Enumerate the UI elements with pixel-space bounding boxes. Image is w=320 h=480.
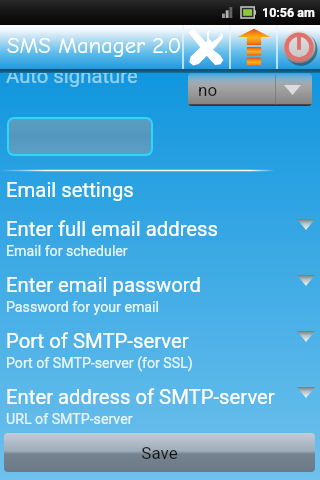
staticText: Save xyxy=(141,443,178,463)
staticText: Email settings xyxy=(6,178,134,202)
staticText: Password for your email xyxy=(6,299,159,316)
button[interactable]: Save xyxy=(4,433,315,472)
staticText: no xyxy=(198,80,218,100)
button[interactable]: Enter email password xyxy=(0,271,320,327)
staticText: URL of SMTP-server xyxy=(6,411,133,428)
staticText: Enter email password xyxy=(6,273,201,297)
button[interactable]: Enter full email address xyxy=(0,215,320,271)
button[interactable]: Tools xyxy=(184,25,229,69)
staticText: Port of SMTP-server xyxy=(6,329,189,353)
staticText: 10:56 am xyxy=(262,5,315,20)
staticText: SMS Manager 2.0 xyxy=(7,33,182,59)
button[interactable]: Port of SMTP-server xyxy=(0,327,320,383)
staticText: Email for scheduler xyxy=(6,243,128,260)
button[interactable]: no xyxy=(188,73,312,106)
staticText: Enter address of SMTP-server xyxy=(6,385,275,409)
staticText: Auto signature xyxy=(6,73,138,88)
button[interactable]: Enter address of SMTP-server xyxy=(0,383,320,439)
staticText: Port of SMTP-server (for SSL) xyxy=(6,355,193,372)
button[interactable]: Send xyxy=(231,25,276,69)
button[interactable] xyxy=(9,119,151,154)
staticText: Enter full email address xyxy=(6,217,219,241)
button[interactable]: Power off xyxy=(278,25,320,69)
